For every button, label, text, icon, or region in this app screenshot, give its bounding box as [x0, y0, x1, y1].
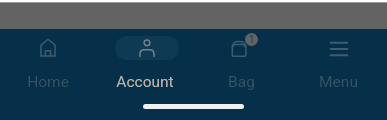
button[interactable]: Account — [96, 29, 193, 91]
button[interactable]: 1 — [193, 29, 290, 91]
staticText: Bag — [228, 73, 255, 91]
staticText: Account — [116, 73, 174, 91]
staticText: Menu — [319, 73, 358, 91]
button[interactable]: Home — [0, 29, 96, 91]
button[interactable]: Menu — [290, 29, 387, 91]
staticText: Home — [27, 73, 69, 91]
staticText: 1 — [249, 34, 255, 46]
